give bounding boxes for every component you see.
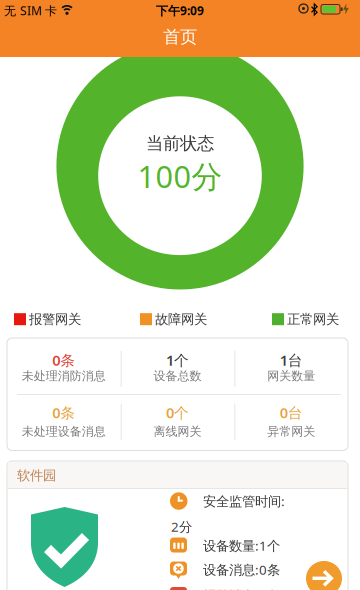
- staticText: 故障网关: [155, 311, 207, 327]
- staticText: 安全监管时间:: [203, 492, 285, 510]
- staticText: 未处理消防消息: [22, 369, 106, 383]
- staticText: 报警消息:0条: [203, 586, 280, 590]
- staticText: 下午9:09: [156, 2, 204, 18]
- staticText: 100分: [137, 156, 222, 196]
- staticText: 1个: [166, 350, 189, 370]
- staticText: 设备数量:1个: [203, 537, 280, 554]
- staticText: 0条: [52, 403, 75, 422]
- staticText: 0台: [280, 403, 303, 422]
- staticText: 设备消息:0条: [203, 561, 280, 578]
- staticText: 正常网关: [287, 311, 339, 327]
- staticText: 离线网关: [153, 424, 201, 439]
- staticText: 0条: [52, 350, 75, 370]
- staticText: 首页: [163, 26, 197, 48]
- staticText: 网关数量: [267, 369, 315, 383]
- staticText: 2分: [171, 518, 192, 535]
- staticText: 1台: [280, 350, 303, 370]
- staticText: 未处理设备消息: [22, 424, 106, 439]
- staticText: 软件园: [17, 467, 56, 484]
- staticText: 设备总数: [153, 369, 201, 383]
- staticText: 0个: [166, 403, 189, 422]
- button[interactable]: 进入软件园: [306, 561, 342, 590]
- staticText: 无 SIM 卡: [4, 2, 57, 18]
- staticText: 当前状态: [146, 133, 214, 154]
- staticText: 报警网关: [29, 311, 81, 327]
- staticText: 异常网关: [267, 424, 315, 439]
